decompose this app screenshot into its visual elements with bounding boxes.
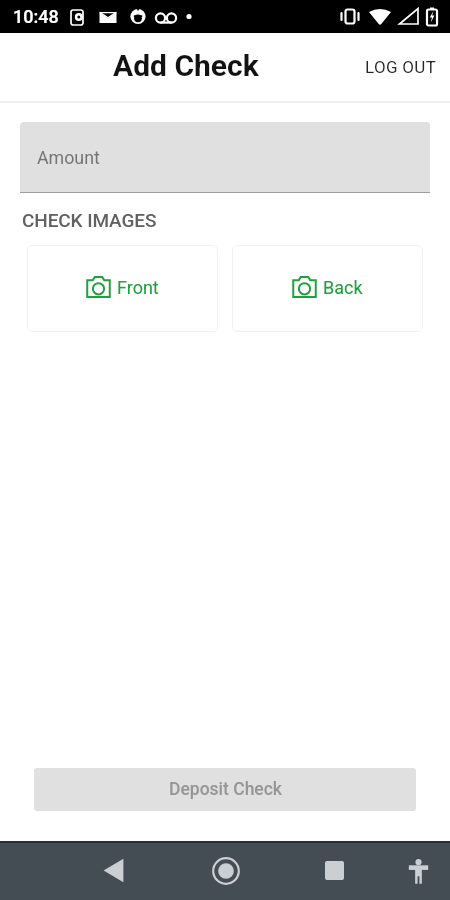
staticText: Deposit Check xyxy=(169,779,282,800)
button[interactable]: Home xyxy=(112,841,224,900)
button[interactable]: Deposit Check xyxy=(34,768,416,811)
button[interactable]: Recent apps xyxy=(224,841,337,900)
button[interactable]: Front xyxy=(27,245,218,332)
button[interactable]: Amount xyxy=(20,122,430,192)
staticText: Back xyxy=(323,277,363,298)
button[interactable]: Accessibility xyxy=(337,841,450,900)
button[interactable]: LOG OUT xyxy=(350,47,450,87)
staticText: CHECK IMAGES xyxy=(22,209,157,231)
staticText: 10:48 xyxy=(13,6,59,27)
staticText: Front xyxy=(117,277,159,298)
staticText: Amount xyxy=(37,147,100,168)
button[interactable]: Back xyxy=(0,841,112,900)
button[interactable]: Back xyxy=(232,245,423,332)
staticText: LOG OUT xyxy=(365,57,437,77)
staticText: Add Check xyxy=(113,48,259,83)
